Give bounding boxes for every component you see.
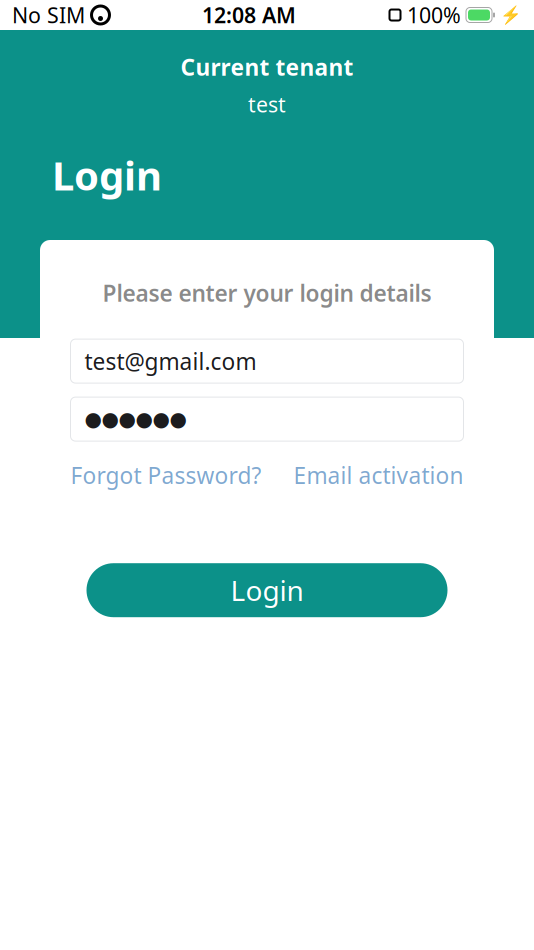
staticText: test: [248, 90, 286, 118]
button[interactable]: Email activation: [293, 460, 463, 490]
staticText: ⚡: [500, 5, 522, 25]
staticText: Login: [230, 572, 303, 609]
staticText: No SIM: [12, 1, 85, 29]
staticText: Current tenant: [180, 52, 353, 82]
staticText: test@gmail.com: [84, 346, 256, 376]
staticText: 100%: [407, 1, 461, 29]
staticText: ●●●●●●: [84, 408, 186, 430]
staticText: Please enter your login details: [102, 278, 431, 308]
staticText: 12:08 AM: [202, 1, 296, 29]
button[interactable]: Login: [86, 563, 447, 617]
staticText: Email activation: [293, 460, 463, 490]
button[interactable]: Forgot Password?: [70, 460, 261, 490]
staticText: Forgot Password?: [70, 460, 261, 490]
staticText: Login: [52, 148, 162, 201]
